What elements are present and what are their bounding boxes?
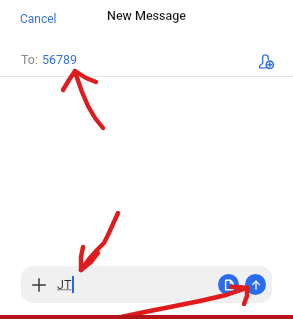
button[interactable]: Add attachment [27, 273, 51, 297]
button[interactable]: Send [245, 274, 266, 295]
staticText: New Message [107, 8, 186, 23]
staticText: 56789 [42, 52, 78, 67]
staticText: JT [57, 277, 72, 292]
button[interactable]: Add contact [253, 48, 279, 74]
button[interactable]: Cancel [16, 10, 61, 28]
button[interactable]: Apps [218, 274, 239, 295]
staticText: To: [21, 52, 42, 67]
staticText: Cancel [20, 12, 57, 26]
